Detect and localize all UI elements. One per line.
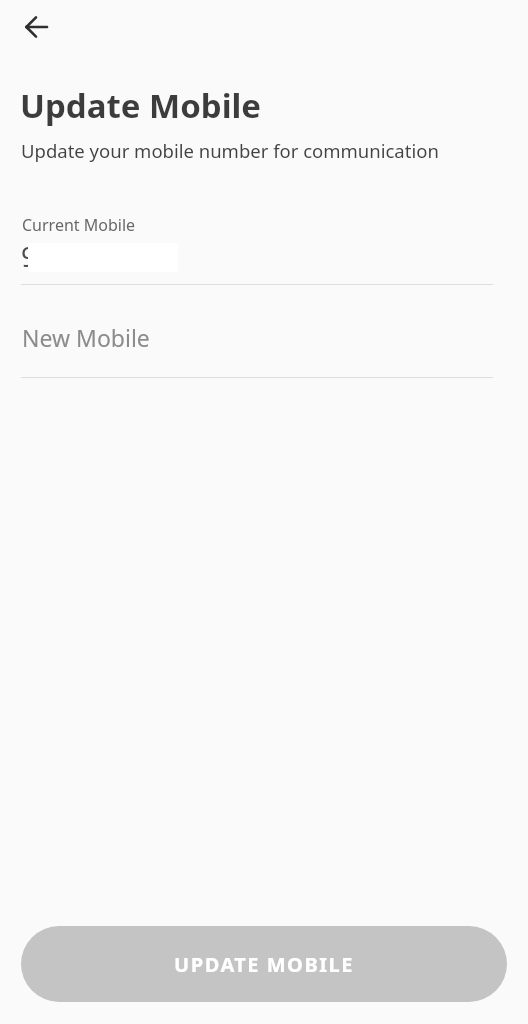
staticText: Current Mobile (22, 214, 136, 236)
staticText: 9 (21, 238, 37, 275)
staticText: UPDATE MOBILE (174, 951, 354, 978)
staticText: Update Mobile (20, 83, 262, 128)
button[interactable] (21, 215, 493, 285)
staticText: Update your mobile number for communicat… (21, 138, 439, 163)
button[interactable] (14, 5, 58, 49)
staticText: New Mobile (22, 322, 150, 353)
button[interactable]: UPDATE MOBILE (21, 926, 507, 1002)
button[interactable] (21, 320, 493, 378)
